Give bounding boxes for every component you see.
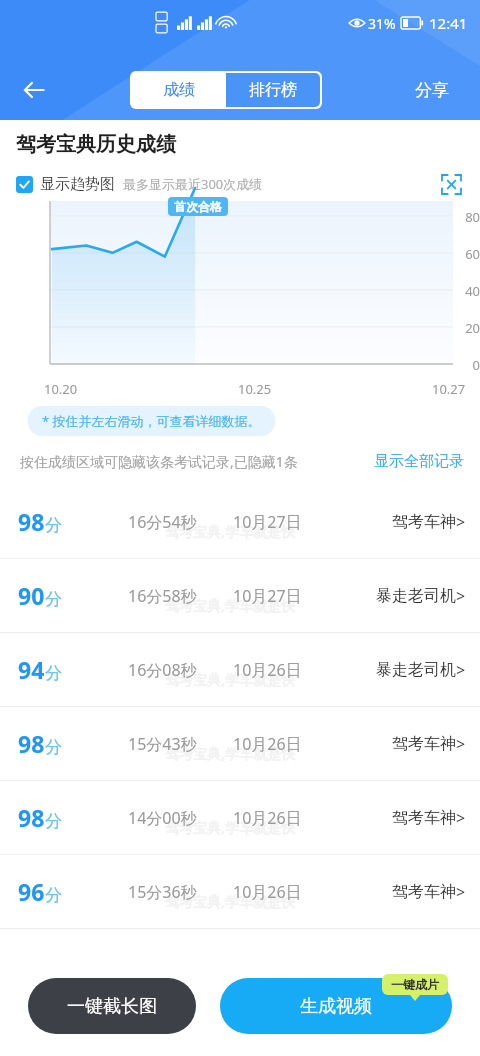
staticText: 显示趋势图 (40, 175, 115, 194)
button[interactable]: 驾考宝典,学车就是快 (0, 633, 480, 706)
staticText: 首次合格 (174, 199, 222, 214)
staticText: 98 (18, 802, 45, 833)
staticText: 16分08秒 (128, 659, 197, 681)
button[interactable]: 显示全部记录 (374, 452, 464, 471)
staticText: 驾考车神 (392, 734, 456, 754)
staticText: 按住成绩区域可隐藏该条考试记录,已隐藏1条 (20, 452, 298, 471)
staticText: 分 (45, 515, 62, 536)
staticText: 80 (8, 208, 480, 226)
staticText: 驾考车神 (392, 512, 456, 532)
button[interactable]: 一键截长图 (28, 978, 196, 1034)
staticText: 驾考宝典,学车就是快 (165, 744, 295, 763)
staticText: 10月26日 (233, 659, 302, 681)
staticText: 一键成片 (391, 977, 439, 992)
staticText: 94 (18, 654, 45, 685)
staticText: 16分58秒 (128, 585, 197, 607)
staticText: 驾考宝典,学车就是快 (165, 596, 295, 615)
staticText: 31% (368, 14, 396, 33)
staticText: 10月26日 (233, 807, 302, 829)
staticText: 90 (18, 580, 45, 611)
button[interactable]: 驾考宝典,学车就是快 (0, 559, 480, 632)
staticText: 分 (45, 885, 62, 906)
staticText: 生成视频 (300, 995, 372, 1018)
button[interactable]: 驾考宝典,学车就是快 (0, 707, 480, 780)
staticText: 驾考宝典,学车就是快 (165, 670, 295, 689)
button[interactable]: 排行榜 (226, 73, 320, 107)
staticText: > (456, 733, 466, 755)
staticText: 暴走老司机 (376, 586, 456, 606)
staticText: 15分43秒 (128, 733, 197, 755)
staticText: 10.25 (238, 380, 272, 398)
staticText: 10月27日 (233, 511, 302, 533)
staticText: 20 (8, 319, 480, 337)
staticText: 10月27日 (233, 585, 302, 607)
staticText: 驾考宝典,学车就是快 (165, 818, 295, 837)
button[interactable]: 显示趋势图 (16, 175, 115, 194)
staticText: 98 (18, 506, 45, 537)
staticText: 10月26日 (233, 881, 302, 903)
staticText: 96 (18, 876, 45, 907)
staticText: 排行榜 (249, 80, 297, 100)
staticText: 10.27 (432, 380, 466, 398)
staticText: 驾考车神 (392, 882, 456, 902)
button[interactable]: 生成视频 (220, 978, 452, 1034)
staticText: 分 (45, 811, 62, 832)
staticText: > (456, 881, 466, 903)
button[interactable]: 驾考宝典,学车就是快 (0, 485, 480, 558)
button[interactable]: 驾考宝典,学车就是快 (0, 855, 480, 928)
staticText: 14分00秒 (128, 807, 197, 829)
staticText: > (456, 511, 466, 533)
staticText: 10.20 (44, 380, 78, 398)
staticText: 显示全部记录 (374, 452, 464, 471)
staticText: 驾考宝典历史成绩 (16, 132, 176, 157)
staticText: 0 (8, 356, 480, 374)
staticText: 98 (18, 728, 45, 759)
staticText: > (456, 659, 466, 681)
staticText: 分 (45, 589, 62, 610)
staticText: 10月26日 (233, 733, 302, 755)
staticText: 驾考宝典,学车就是快 (165, 522, 295, 541)
staticText: > (456, 585, 466, 607)
staticText: 一键截长图 (67, 995, 157, 1018)
staticText: 成绩 (163, 80, 195, 100)
staticText: 最多显示最近300次成绩 (123, 175, 263, 193)
button[interactable]: 成绩 (132, 73, 226, 107)
button[interactable]: 驾考宝典,学车就是快 (0, 781, 480, 854)
button[interactable]: Back (0, 60, 68, 120)
button[interactable]: Fullscreen (434, 167, 468, 201)
staticText: 分享 (415, 80, 449, 101)
staticText: * 按住并左右滑动，可查看详细数据。 (42, 412, 261, 430)
staticText: 驾考车神 (392, 808, 456, 828)
staticText: 分 (45, 737, 62, 758)
staticText: 暴走老司机 (376, 660, 456, 680)
staticText: 16分54秒 (128, 511, 197, 533)
staticText: 60 (8, 245, 480, 263)
button[interactable]: 分享 (384, 60, 480, 120)
staticText: 12:41 (429, 13, 468, 33)
staticText: 15分36秒 (128, 881, 197, 903)
staticText: 分 (45, 663, 62, 684)
staticText: > (456, 807, 466, 829)
staticText: 驾考宝典,学车就是快 (165, 892, 295, 911)
button[interactable]: * 按住并左右滑动，可查看详细数据。 (28, 406, 275, 436)
staticText: 40 (8, 282, 480, 300)
